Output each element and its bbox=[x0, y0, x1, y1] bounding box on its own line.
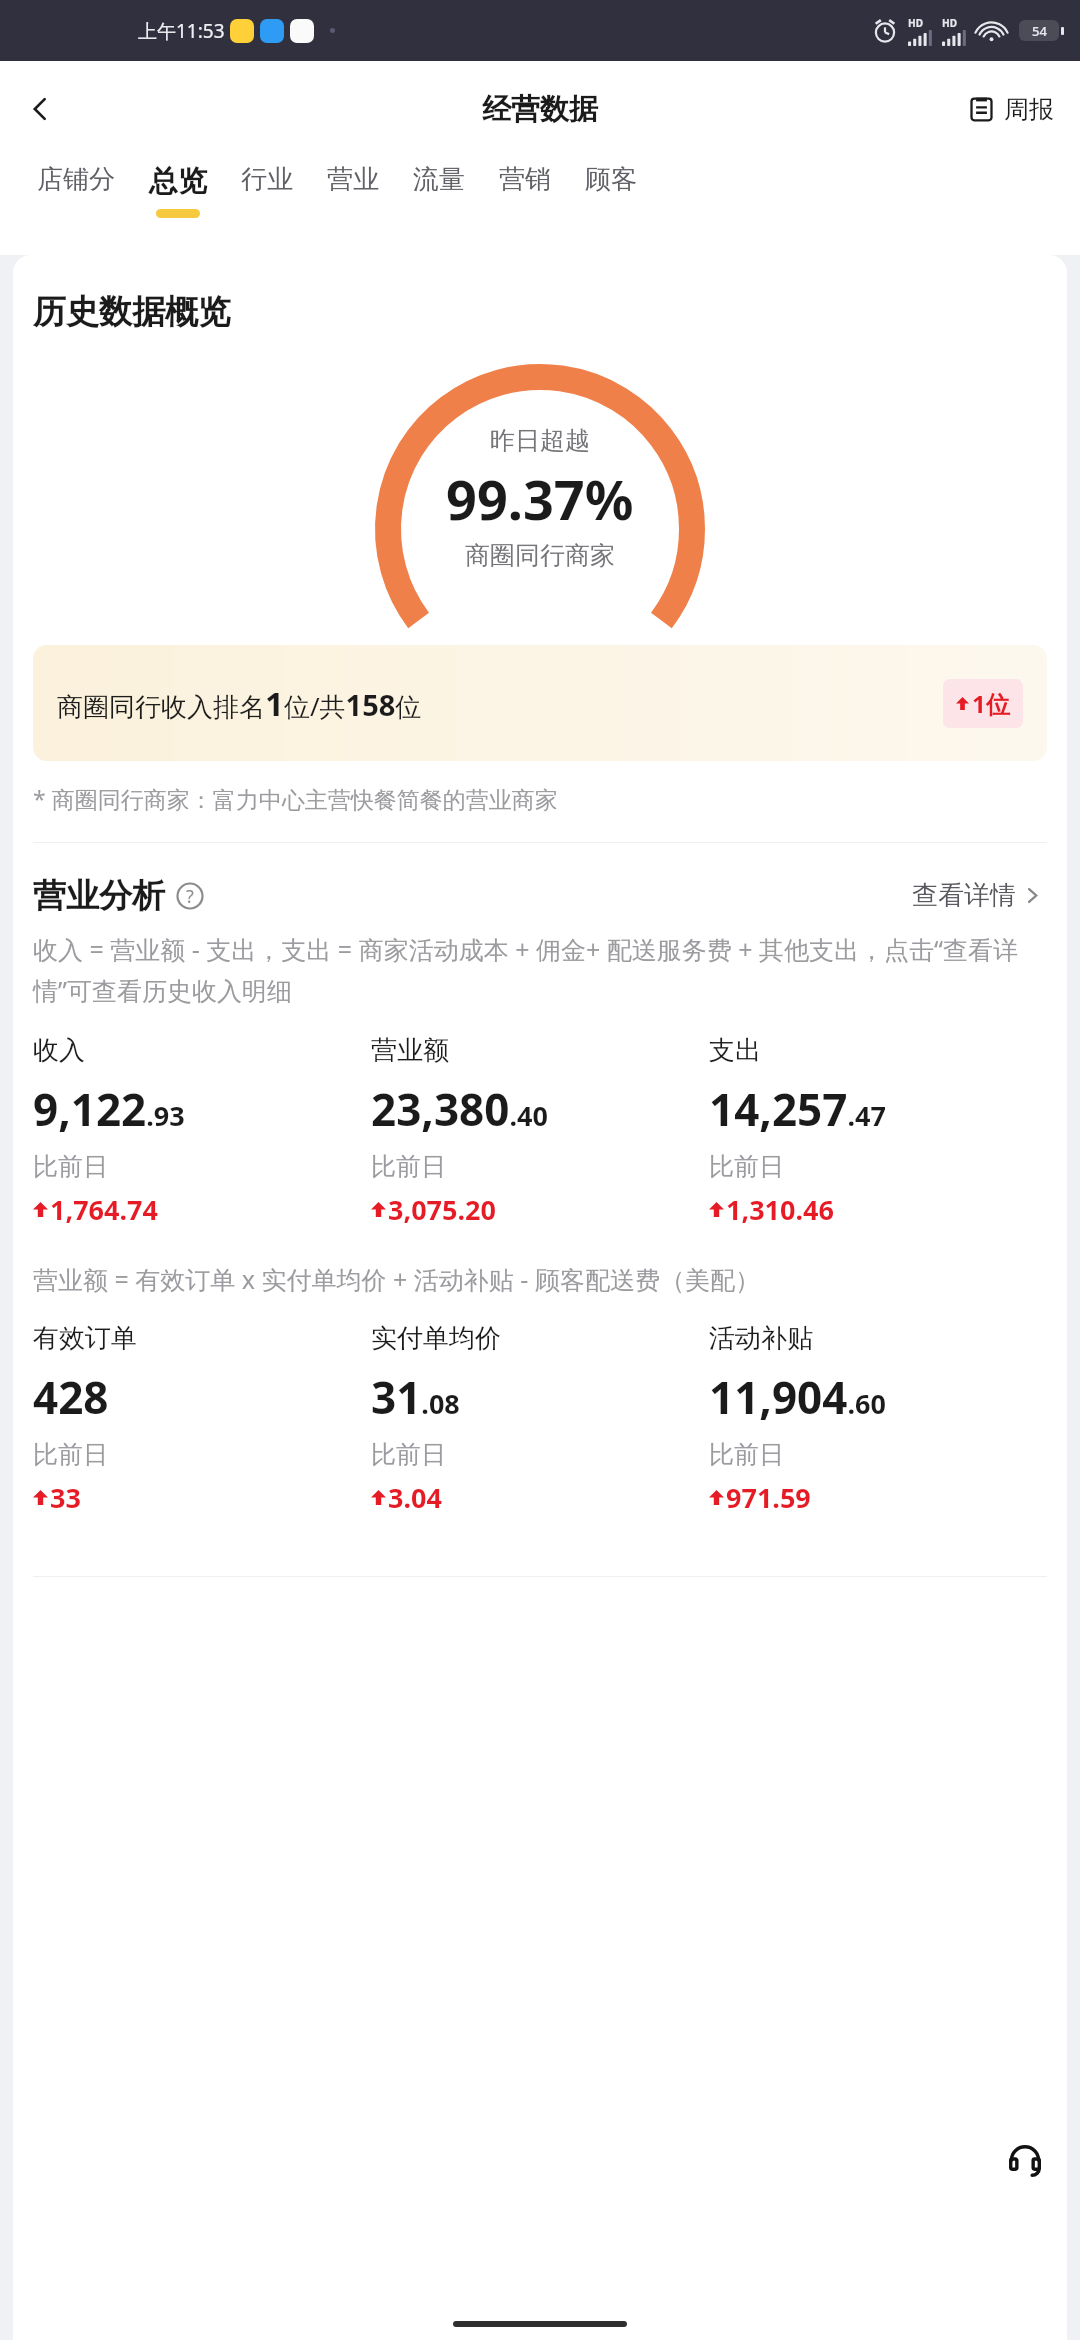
staticText: 比前日 bbox=[33, 1439, 108, 1470]
button[interactable]: 店铺分 bbox=[20, 157, 132, 202]
staticText: 营业分析 bbox=[33, 875, 165, 917]
staticText: 33 bbox=[50, 1479, 81, 1516]
staticText: 971.59 bbox=[726, 1479, 811, 1516]
staticText: 实付单均价 bbox=[371, 1322, 501, 1355]
staticText: 商圈同行商家 bbox=[465, 540, 615, 571]
staticText: 商圈同行收入排名1位/共158位 bbox=[57, 681, 422, 726]
staticText: 支出 bbox=[709, 1034, 761, 1067]
staticText: 查看详情 bbox=[912, 879, 1016, 912]
staticText: 总览 bbox=[149, 163, 207, 200]
staticText: 流量 bbox=[413, 163, 465, 196]
staticText: 3,075.20 bbox=[388, 1191, 496, 1228]
staticText: 顾客 bbox=[585, 163, 637, 196]
staticText: 收入 bbox=[33, 1034, 85, 1067]
staticText: 23,380.40 bbox=[371, 1079, 548, 1139]
staticText: 14,257.47 bbox=[709, 1079, 886, 1139]
staticText: 比前日 bbox=[371, 1439, 446, 1470]
staticText: HD bbox=[942, 16, 957, 30]
staticText: 3.04 bbox=[388, 1479, 442, 1516]
staticText: 上午11:53 bbox=[138, 18, 225, 44]
staticText: 1位 bbox=[972, 687, 1010, 720]
staticText: 有效订单 bbox=[33, 1322, 137, 1355]
button[interactable]: 查看详情 bbox=[906, 873, 1047, 918]
staticText: 收入 = 营业额 - 支出，支出 = 商家活动成本 + 佣金+ 配送服务费 + … bbox=[33, 932, 1047, 1008]
staticText: 99.37% bbox=[446, 462, 634, 536]
staticText: 1,310.46 bbox=[726, 1191, 834, 1228]
staticText: ? bbox=[186, 884, 194, 909]
button[interactable]: 流量 bbox=[396, 157, 482, 202]
staticText: 428 bbox=[33, 1367, 109, 1427]
button[interactable]: 总览 bbox=[132, 157, 224, 224]
staticText: 比前日 bbox=[709, 1151, 784, 1182]
button[interactable]: 客服 bbox=[992, 2126, 1058, 2192]
staticText: 昨日超越 bbox=[490, 425, 590, 456]
staticText: 历史数据概览 bbox=[33, 291, 231, 333]
button[interactable]: 顾客 bbox=[568, 157, 654, 202]
staticText: 经营数据 bbox=[482, 91, 598, 128]
button[interactable]: 返回 bbox=[14, 83, 66, 135]
staticText: 营业 bbox=[327, 163, 379, 196]
staticText: 1,764.74 bbox=[50, 1191, 158, 1228]
staticText: * 商圈同行商家：富力中心主营快餐简餐的营业商家 bbox=[33, 783, 558, 814]
staticText: 31.08 bbox=[371, 1367, 460, 1427]
staticText: 活动补贴 bbox=[709, 1322, 813, 1355]
staticText: 店铺分 bbox=[37, 163, 115, 196]
button[interactable]: 行业 bbox=[224, 157, 310, 202]
button[interactable]: 周报 bbox=[962, 88, 1060, 131]
staticText: HD bbox=[908, 16, 923, 30]
staticText: 比前日 bbox=[371, 1151, 446, 1182]
staticText: 比前日 bbox=[709, 1439, 784, 1470]
staticText: 9,122.93 bbox=[33, 1079, 185, 1139]
staticText: 营销 bbox=[499, 163, 551, 196]
button[interactable]: 说明 bbox=[175, 881, 205, 911]
button[interactable]: 商圈同行收入排名1位/共158位 bbox=[33, 645, 1047, 761]
staticText: 营业额 = 有效订单 x 实付单均价 + 活动补贴 - 顾客配送费（美配） bbox=[33, 1262, 760, 1296]
button[interactable]: 营业 bbox=[310, 157, 396, 202]
staticText: 行业 bbox=[241, 163, 293, 196]
staticText: 营业额 bbox=[371, 1034, 449, 1067]
staticText: 比前日 bbox=[33, 1151, 108, 1182]
button[interactable]: 营销 bbox=[482, 157, 568, 202]
staticText: 54 bbox=[1032, 22, 1047, 40]
staticText: 11,904.60 bbox=[709, 1367, 886, 1427]
staticText: 周报 bbox=[1004, 94, 1054, 125]
